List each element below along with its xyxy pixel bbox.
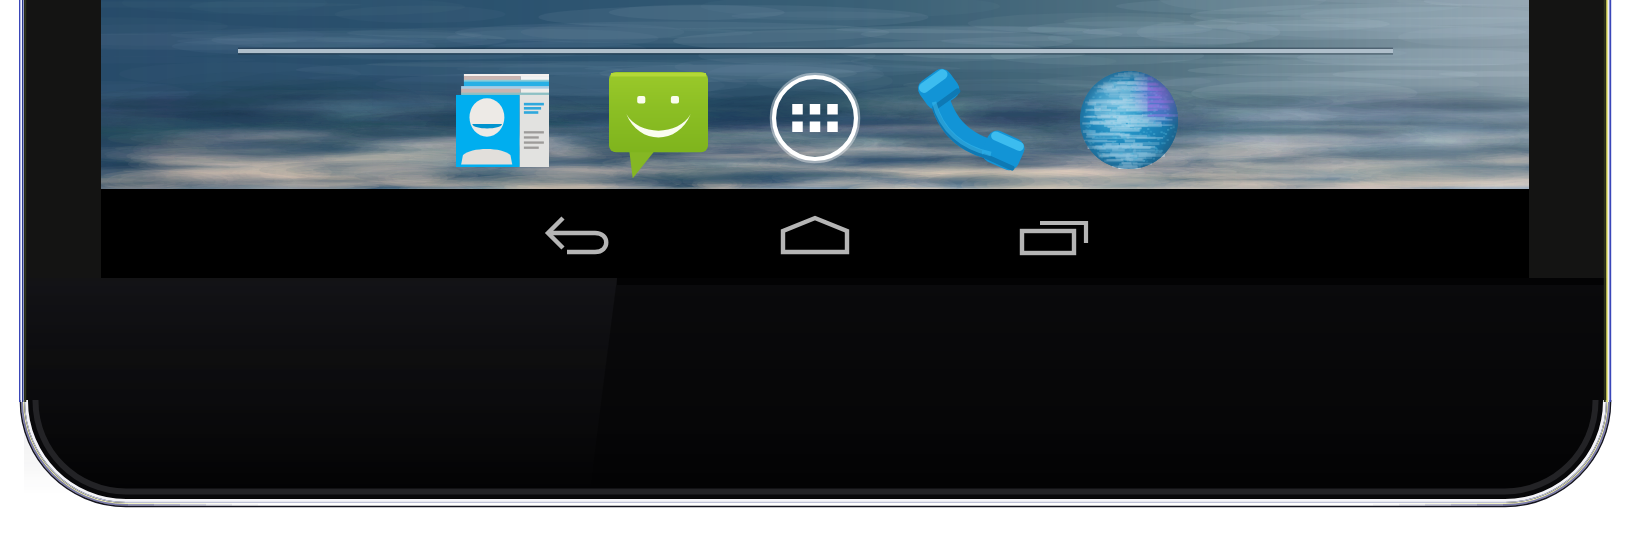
button[interactable]: Apps xyxy=(747,50,883,186)
button[interactable]: Browser xyxy=(1061,52,1197,188)
button[interactable]: Home xyxy=(577,189,1053,278)
button[interactable]: Recent apps xyxy=(1053,189,1529,278)
button[interactable]: Messaging xyxy=(592,60,728,184)
button[interactable]: Phone xyxy=(905,60,1041,184)
button[interactable]: People xyxy=(432,60,568,184)
button[interactable]: Back xyxy=(101,189,577,278)
